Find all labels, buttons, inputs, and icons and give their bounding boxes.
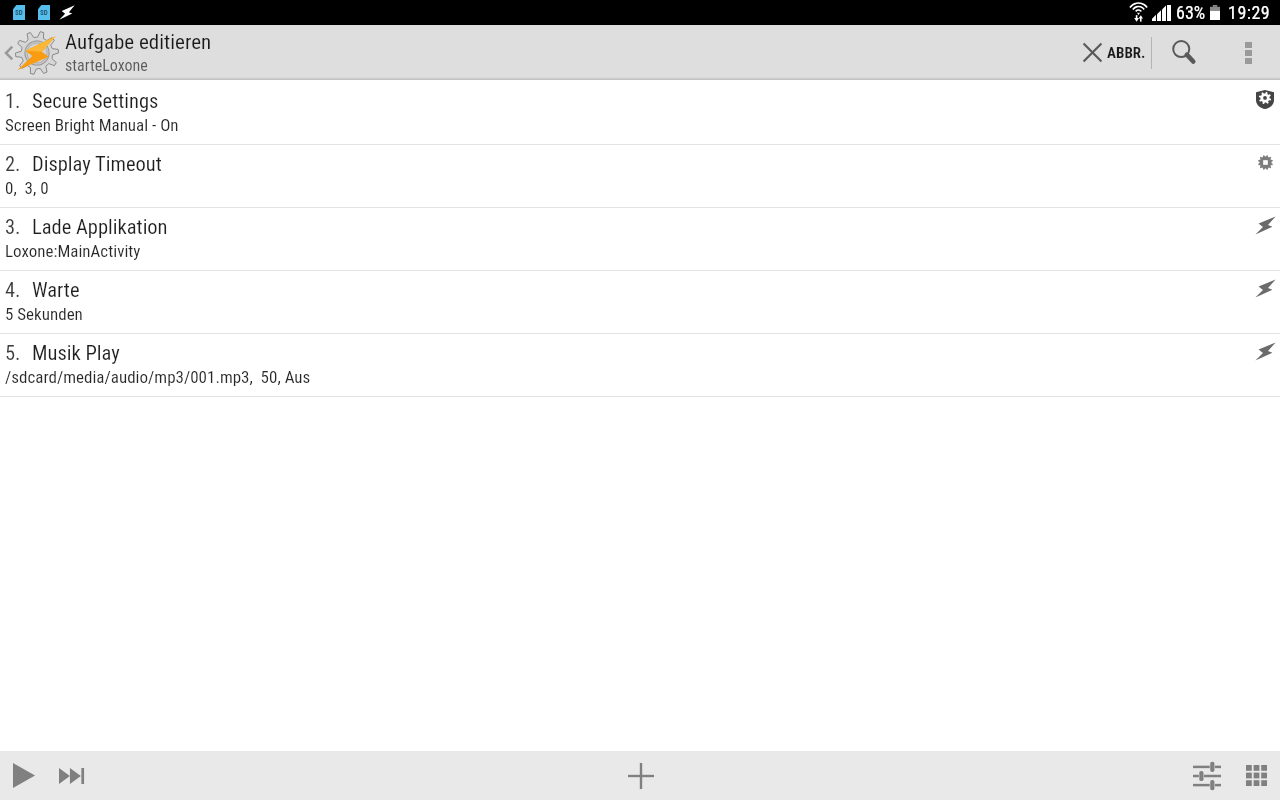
other: Back: [4, 45, 13, 61]
button[interactable]: Add action: [616, 751, 665, 800]
button[interactable]: Grid view: [1232, 751, 1280, 800]
staticText: 4.: [5, 278, 21, 302]
staticText: Musik Play: [32, 341, 120, 365]
button[interactable]: Step forward: [47, 751, 97, 800]
staticText: starteLoxone: [65, 56, 148, 75]
staticText: 5 Sekunden: [5, 304, 83, 324]
staticText: Secure Settings: [32, 89, 159, 113]
staticText: SD: [15, 9, 23, 17]
button[interactable]: 4.: [0, 271, 1280, 334]
staticText: Loxone:MainActivity: [5, 241, 141, 261]
button[interactable]: 5.: [0, 334, 1280, 397]
staticText: ABBR.: [1107, 44, 1146, 62]
button[interactable]: Run task: [0, 751, 47, 800]
staticText: Screen Bright Manual - On: [5, 115, 179, 135]
staticText: /sdcard/media/audio/mp3/001.mp3, 50, Aus: [5, 367, 311, 387]
staticText: 63%: [1176, 2, 1206, 23]
staticText: 2.: [5, 152, 21, 176]
staticText: 19:29: [1228, 2, 1271, 23]
staticText: Warte: [32, 278, 80, 302]
button[interactable]: 1.: [0, 82, 1280, 145]
staticText: 0, 3, 0: [5, 178, 49, 198]
staticText: Display Timeout: [32, 152, 162, 176]
staticText: SD: [40, 9, 48, 17]
staticText: Lade Applikation: [32, 215, 168, 239]
staticText: Aufgabe editieren: [65, 30, 212, 55]
staticText: 3.: [5, 215, 21, 239]
button[interactable]: Task properties: [1182, 751, 1232, 800]
button[interactable]: Back: [0, 25, 212, 80]
button[interactable]: 2.: [0, 145, 1280, 208]
staticText: 5.: [5, 341, 21, 365]
button[interactable]: ABBR.: [1067, 25, 1151, 80]
button[interactable]: 3.: [0, 208, 1280, 271]
staticText: 1.: [5, 89, 21, 113]
button[interactable]: Search: [1152, 25, 1216, 80]
button[interactable]: More options: [1216, 25, 1280, 80]
